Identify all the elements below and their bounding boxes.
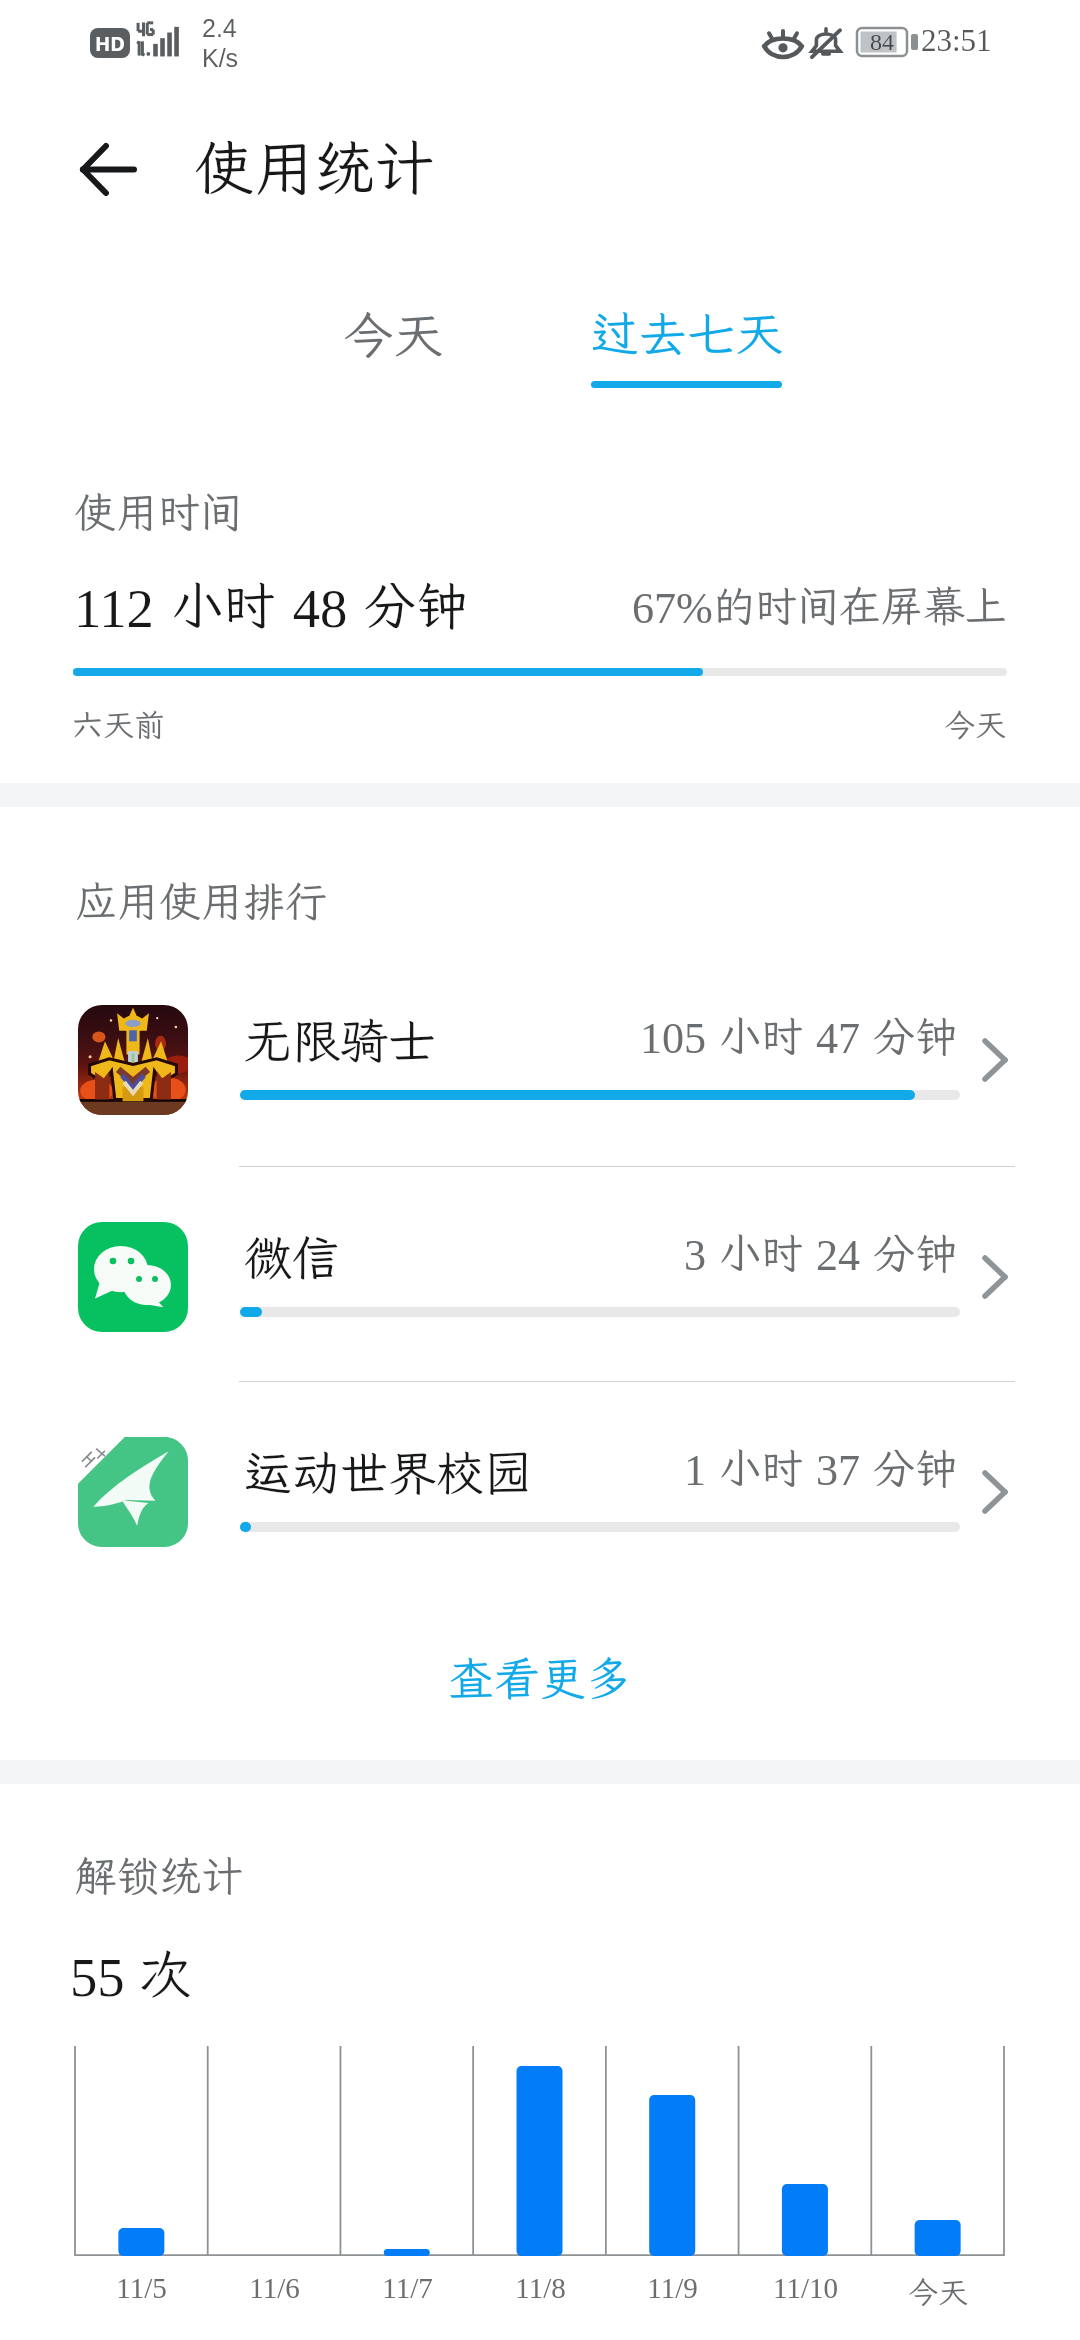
staticText: 3 [684,1231,718,1280]
staticText: 分钟 [873,1225,958,1280]
staticText: 小时 [719,1440,804,1495]
other: Open app details [960,1457,1030,1527]
staticText: 48 [279,578,361,638]
staticText: K/s [202,44,239,72]
staticText: 11/6 [249,2272,300,2304]
staticText: 今天 [908,2272,968,2312]
button[interactable]: 查看更多 [400,1630,680,1726]
other: Eye comfort mode [763,31,803,59]
staticText: 11/7 [382,2272,433,2304]
staticText: 今天 [944,704,1006,745]
staticText: 105 [640,1014,718,1063]
staticText: 解锁统计 [75,1848,244,1903]
staticText: 今天 [343,301,443,367]
other: Open app details [960,1242,1030,1312]
staticText: 小时 [719,1225,804,1280]
staticText: 分钟 [364,570,469,638]
staticText: 1 [684,1446,718,1495]
staticText: 过去七天 [591,301,784,364]
staticText: 分钟 [873,1008,958,1063]
staticText: 使用时间 [74,484,243,539]
staticText: 84 [870,29,894,56]
staticText: 小时 [171,570,276,638]
staticText: 47 [805,1014,872,1063]
staticText: 小时 [719,1008,804,1063]
staticText: 11/8 [515,2272,566,2304]
button[interactable]: 过去七天 [543,301,831,403]
staticText: 55 [70,1947,139,2007]
button[interactable]: 今天 [249,301,537,403]
other: Open app details [960,1025,1030,1095]
staticText: 查看更多 [448,1648,632,1709]
staticText: 分钟 [873,1440,958,1495]
staticText: 使用统计 [194,127,434,206]
other: Silent mode [810,27,842,59]
button[interactable] [0,969,1080,1151]
button[interactable] [0,1401,1080,1583]
staticText: 11/9 [647,2272,698,2304]
staticText: HD [95,30,125,57]
staticText: 运动世界校园 [244,1440,533,1503]
staticText: 24 [805,1231,872,1280]
staticText: 的时间在屏幕上 [713,578,1008,633]
staticText: 2.4 [202,14,237,42]
staticText: 次 [139,1939,192,2007]
staticText: 微信 [244,1225,341,1288]
staticText: 37 [805,1446,872,1495]
staticText: 11/5 [116,2272,167,2304]
staticText: 无限骑士 [244,1008,437,1071]
staticText: 应用使用排行 [75,873,328,928]
button[interactable]: Back [63,124,153,214]
staticText: 11/10 [773,2272,838,2304]
staticText: 67% [632,584,713,633]
staticText: 112 [74,578,168,638]
staticText: 23:51 [921,23,992,57]
staticText: 六天前 [72,704,165,745]
button[interactable] [0,1186,1080,1368]
